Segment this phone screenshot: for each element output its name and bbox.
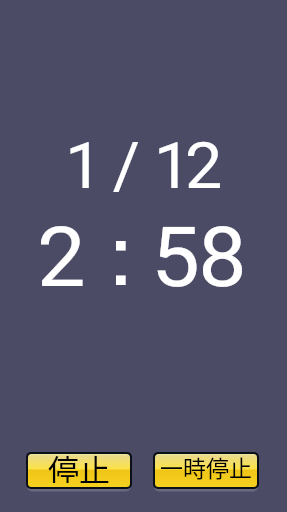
staticText: 1 / 12 — [68, 129, 222, 204]
staticText: 停止 — [48, 446, 110, 483]
staticText: 58 — [151, 209, 246, 306]
staticText: 2 — [37, 209, 86, 306]
button[interactable]: 停止 — [26, 452, 132, 492]
button[interactable]: 一時停止 — [153, 452, 259, 492]
staticText: 一時停止 — [160, 450, 252, 483]
